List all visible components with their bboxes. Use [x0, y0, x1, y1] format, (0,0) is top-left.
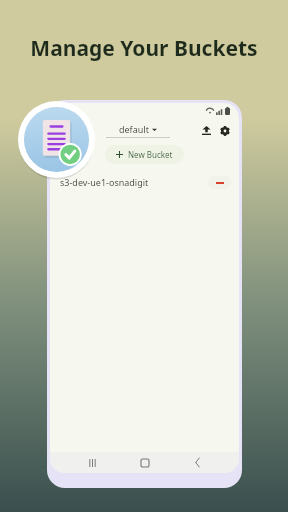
- staticText: New Bucket: [128, 149, 173, 160]
- button[interactable]: New Bucket: [105, 145, 184, 164]
- staticText: Manage Your Buckets: [30, 34, 258, 63]
- button[interactable]: s3-dev-ue1-osnadigit: [50, 171, 239, 193]
- button[interactable]: Remove bucket: [208, 176, 231, 189]
- button[interactable]: Upload: [199, 123, 214, 138]
- staticText: Profile:: [57, 125, 81, 135]
- staticText: default: [119, 123, 149, 135]
- button[interactable]: Settings: [217, 123, 232, 138]
- button[interactable]: default: [81, 123, 195, 138]
- button[interactable]: Back: [186, 452, 208, 473]
- staticText: s3-dev-ue1-osnadigit: [60, 176, 208, 188]
- button[interactable]: Home: [134, 452, 156, 473]
- button[interactable]: Recent apps: [81, 452, 103, 473]
